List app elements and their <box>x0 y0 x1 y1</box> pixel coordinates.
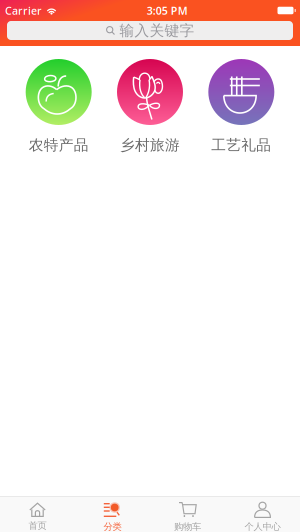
staticText: 购物车 <box>174 521 201 532</box>
button[interactable]: 分类 <box>75 496 150 532</box>
staticText: 乡村旅游 <box>120 136 180 154</box>
staticText: 农特产品 <box>29 136 89 154</box>
staticText: 工艺礼品 <box>211 136 271 154</box>
staticText: 输入关键字 <box>119 21 194 39</box>
button[interactable]: 个人中心 <box>225 496 300 532</box>
button[interactable]: 农特产品 <box>13 59 104 154</box>
staticText: 3:05 PM <box>147 3 188 18</box>
button[interactable]: 输入关键字 <box>7 21 293 40</box>
staticText: Carrier <box>5 3 42 18</box>
button[interactable]: 工艺礼品 <box>196 59 287 154</box>
button[interactable]: 乡村旅游 <box>104 59 196 154</box>
button[interactable]: 购物车 <box>150 496 225 532</box>
staticText: 分类 <box>103 521 121 532</box>
staticText: 首页 <box>28 520 46 531</box>
button[interactable]: 首页 <box>0 496 75 532</box>
staticText: 个人中心 <box>244 521 280 532</box>
